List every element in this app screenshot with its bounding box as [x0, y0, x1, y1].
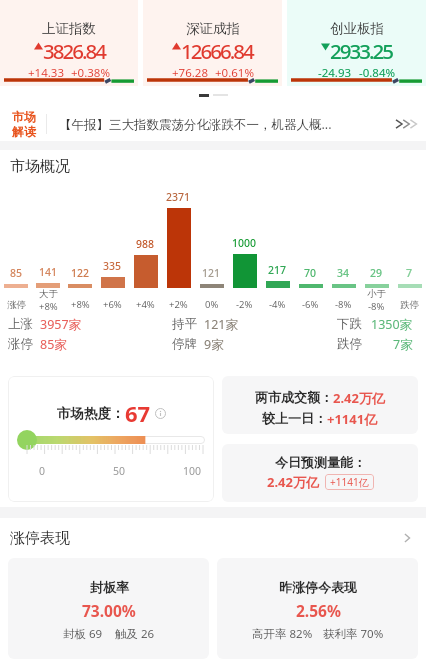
staticText: 涨停表现: [10, 529, 70, 548]
staticText: 涨停: [8, 336, 33, 352]
staticText: 上涨: [8, 316, 33, 332]
button[interactable]: 上证指数: [0, 0, 138, 86]
staticText: 0: [32, 464, 52, 478]
staticText: 335: [103, 259, 122, 273]
button[interactable]: 涨停表现: [10, 518, 414, 558]
staticText: 100: [177, 464, 207, 478]
staticText: 70: [304, 266, 317, 280]
staticText: 较上一日：: [262, 410, 327, 426]
button[interactable]: 创业板指: [287, 0, 426, 86]
staticText: 【午报】三大指数震荡分化涨跌不一，机器人概...: [59, 116, 395, 133]
staticText: -6%: [302, 298, 319, 311]
staticText: 2.42万亿: [333, 389, 385, 407]
staticText: 持平: [172, 316, 197, 332]
staticText: 50: [107, 464, 131, 478]
staticText: 3957家: [40, 316, 82, 333]
button[interactable]: 市场: [12, 107, 416, 141]
staticText: 122: [71, 266, 90, 280]
staticText: 大于: [39, 288, 58, 300]
staticText: -24.93: [318, 65, 352, 81]
staticText: 2371: [166, 190, 191, 204]
staticText: 创业板指: [330, 20, 384, 37]
staticText: +1141亿: [330, 475, 369, 489]
staticText: 深证成指: [186, 20, 240, 37]
staticText: 3826.84: [43, 37, 105, 65]
staticText: 解读: [12, 124, 36, 139]
staticText: 7家: [393, 336, 413, 353]
staticText: 上证指数: [42, 20, 96, 37]
staticText: 34: [337, 266, 350, 280]
staticText: 85家: [40, 336, 67, 353]
staticText: +0.38%: [71, 65, 110, 81]
staticText: 12666.84: [181, 37, 253, 65]
button[interactable]: 今日预测量能：: [222, 444, 418, 502]
staticText: 跌停: [400, 299, 419, 311]
staticText: 市场概况: [10, 157, 70, 176]
staticText: 2933.25: [330, 37, 392, 65]
staticText: +8%: [39, 300, 58, 313]
button[interactable]: 深证成指: [143, 0, 282, 86]
other: More news: [395, 117, 416, 131]
staticText: +2%: [169, 298, 188, 311]
staticText: +8%: [71, 298, 90, 311]
staticText: 市场: [12, 109, 36, 124]
staticText: 市场热度：: [57, 405, 125, 422]
staticText: 跌停: [337, 336, 362, 352]
staticText: 获利率 70%: [323, 626, 384, 642]
staticText: 67: [125, 398, 151, 428]
staticText: 2.56%: [296, 600, 341, 621]
staticText: 9家: [204, 336, 224, 353]
staticText: 0%: [205, 298, 219, 311]
staticText: 封板 69: [63, 626, 103, 642]
staticText: +1141亿: [327, 410, 378, 428]
staticText: -4%: [269, 298, 286, 311]
staticText: 1350家: [371, 316, 413, 333]
staticText: 85: [10, 266, 23, 280]
button[interactable]: 市场热度：: [8, 376, 214, 502]
staticText: 121: [202, 266, 221, 280]
staticText: 2.42万亿: [267, 473, 319, 491]
staticText: 涨停: [7, 299, 26, 311]
button[interactable]: 昨涨停今表现: [217, 558, 418, 659]
staticText: 121家: [204, 316, 238, 333]
staticText: 217: [268, 263, 287, 277]
staticText: 小于: [367, 288, 386, 300]
staticText: 高开率 82%: [252, 626, 313, 642]
staticText: -8%: [335, 298, 352, 311]
staticText: -8%: [368, 300, 385, 313]
staticText: 封板率: [90, 579, 129, 595]
staticText: 今日预测量能：: [275, 454, 366, 470]
staticText: 141: [39, 265, 58, 279]
other: More: [400, 531, 414, 545]
staticText: 1000: [232, 236, 257, 250]
staticText: -2%: [236, 298, 253, 311]
staticText: 下跌: [337, 316, 362, 332]
button[interactable]: 两市成交额：: [222, 376, 418, 434]
staticText: 两市成交额：: [255, 389, 333, 405]
staticText: 29: [370, 266, 383, 280]
staticText: +0.61%: [215, 65, 254, 81]
staticText: +6%: [103, 298, 122, 311]
staticText: 73.00%: [82, 600, 136, 621]
staticText: 昨涨停今表现: [279, 579, 357, 595]
staticText: 988: [136, 237, 155, 251]
staticText: +4%: [136, 298, 155, 311]
button[interactable]: 封板率: [8, 558, 209, 659]
staticText: 停牌: [172, 336, 197, 352]
staticText: 7: [406, 266, 413, 280]
staticText: +76.28: [172, 65, 208, 81]
staticText: +14.33: [28, 65, 64, 81]
staticText: -0.84%: [359, 65, 396, 81]
staticText: 触及 26: [115, 626, 155, 642]
